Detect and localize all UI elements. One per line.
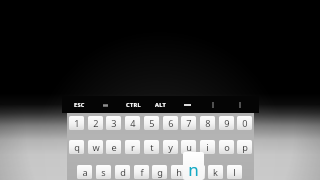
staticText: 2 [93, 117, 99, 130]
button[interactable]: 3 [106, 116, 121, 130]
staticText: 6 [168, 117, 174, 130]
button[interactable]: g [152, 165, 167, 179]
staticText: j [196, 166, 199, 179]
button[interactable]: 9 [219, 116, 234, 130]
button[interactable]: 7 [181, 116, 196, 130]
staticText: d [120, 166, 126, 179]
button[interactable]: u [181, 140, 196, 154]
staticText: 5 [149, 117, 155, 130]
staticText: g [157, 166, 163, 179]
button[interactable]: 0 [237, 116, 252, 130]
button[interactable]: ESC [74, 101, 85, 109]
button[interactable]: 1 [69, 116, 84, 130]
staticText: l [233, 166, 236, 179]
button[interactable]: k [208, 165, 223, 179]
button[interactable]: j [190, 165, 205, 179]
staticText: ALT [155, 101, 167, 109]
button[interactable]: CTRL [126, 101, 141, 109]
staticText: t [150, 141, 154, 154]
button[interactable]: Tab [103, 103, 108, 108]
staticText: CTRL [126, 101, 141, 109]
button[interactable]: 2 [88, 116, 103, 130]
button[interactable]: 8 [200, 116, 215, 130]
staticText: w [92, 141, 100, 154]
button[interactable]: l [227, 165, 242, 179]
staticText: r [131, 141, 135, 154]
staticText: ESC [74, 101, 85, 109]
button[interactable]: 5 [144, 116, 159, 130]
button[interactable]: 6 [163, 116, 178, 130]
staticText: a [82, 166, 88, 179]
staticText: e [111, 141, 117, 154]
staticText: 9 [224, 117, 230, 130]
button[interactable]: r [125, 140, 140, 154]
button[interactable]: t [144, 140, 159, 154]
button[interactable]: 4 [125, 116, 140, 130]
button[interactable]: i [200, 140, 215, 154]
staticText: q [74, 141, 80, 154]
staticText: 8 [205, 117, 211, 130]
button[interactable]: ALT [155, 101, 167, 109]
staticText: y [168, 141, 173, 154]
staticText: i [206, 141, 209, 154]
button[interactable]: q [69, 140, 84, 154]
button[interactable]: n [183, 152, 204, 180]
button[interactable]: d [115, 165, 130, 179]
staticText: o [224, 141, 230, 154]
button[interactable]: o [219, 140, 234, 154]
staticText: 1 [74, 117, 80, 130]
staticText: n [188, 158, 199, 180]
button[interactable]: h [171, 165, 186, 179]
staticText: 0 [242, 117, 248, 130]
button[interactable]: f [134, 165, 149, 179]
button[interactable]: p [237, 140, 252, 154]
button[interactable]: s [96, 165, 111, 179]
staticText: s [101, 166, 106, 179]
button[interactable]: y [163, 140, 178, 154]
staticText: f [140, 166, 144, 179]
staticText: 4 [130, 117, 136, 130]
button[interactable]: a [77, 165, 92, 179]
staticText: h [176, 166, 182, 179]
button[interactable]: e [106, 140, 121, 154]
button[interactable]: w [88, 140, 103, 154]
staticText: k [213, 166, 218, 179]
staticText: p [242, 141, 248, 154]
staticText: 3 [111, 117, 117, 130]
staticText: 7 [186, 117, 192, 130]
staticText: u [186, 141, 192, 154]
